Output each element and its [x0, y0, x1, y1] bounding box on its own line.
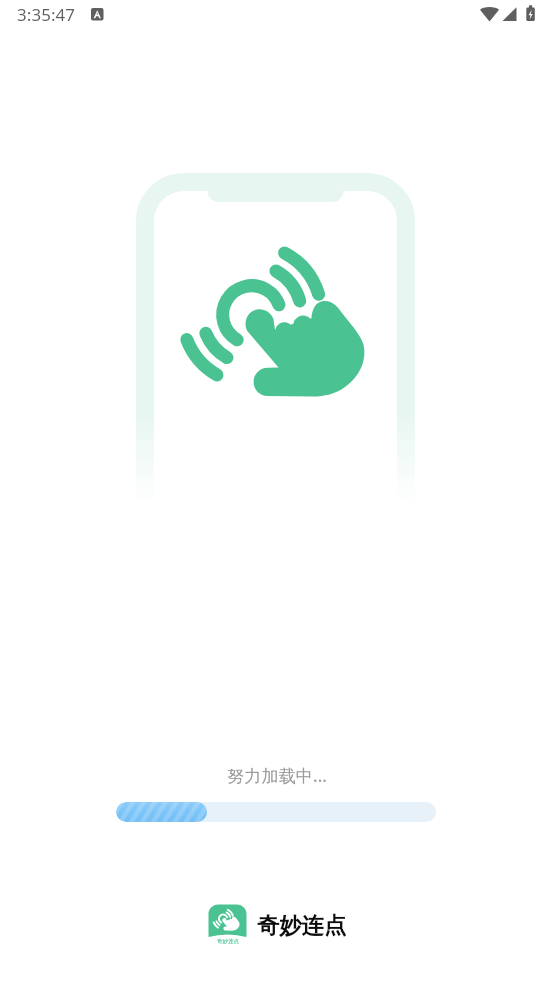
other: Loading progress — [116, 802, 436, 822]
staticText: 奇妙连点 — [217, 938, 239, 945]
staticText: 努力加载中... — [227, 764, 327, 787]
staticText: 奇妙连点 — [257, 912, 347, 940]
button[interactable]: 奇妙连点 — [208, 904, 348, 944]
staticText: 3:35:47 — [17, 3, 76, 26]
